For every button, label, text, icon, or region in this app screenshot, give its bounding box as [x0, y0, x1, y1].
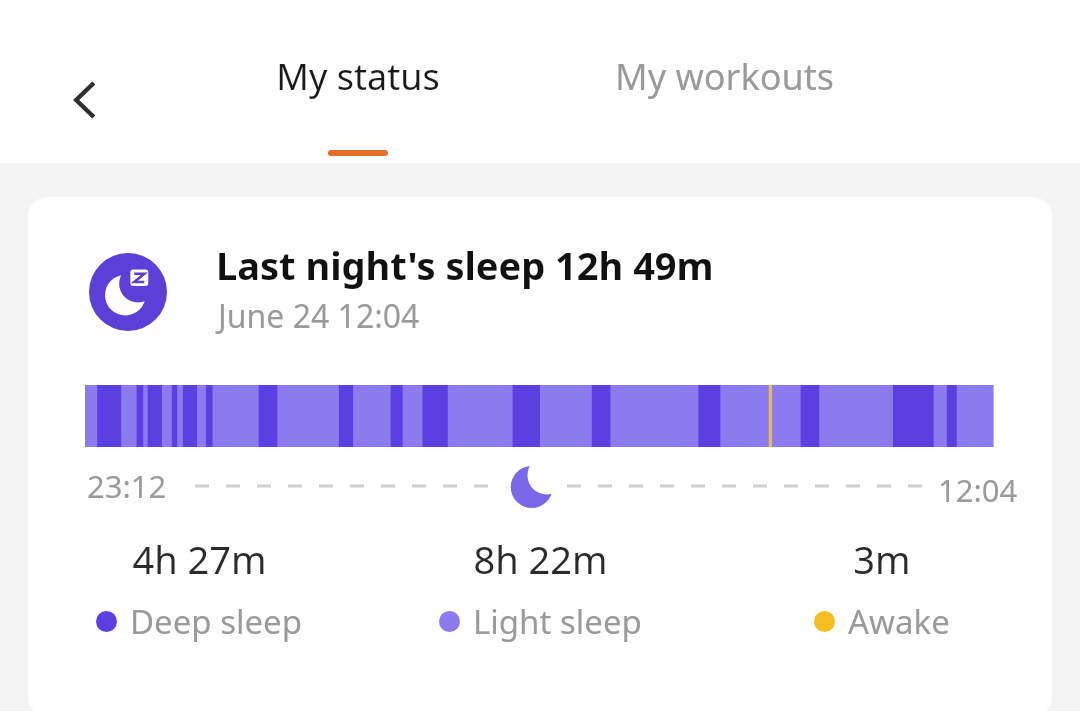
button[interactable]: 4h 27m — [28, 533, 370, 644]
button[interactable]: My status — [230, 52, 486, 156]
staticText: 3m — [853, 533, 911, 585]
staticText: Light sleep — [473, 599, 642, 644]
button[interactable]: 3m — [711, 533, 1052, 644]
button[interactable]: Back — [48, 63, 122, 137]
staticText: June 24 12:04 — [218, 294, 420, 338]
button[interactable]: Last night's sleep 12h 49m — [28, 197, 1052, 711]
staticText: Last night's sleep 12h 49m — [216, 239, 714, 291]
staticText: My workouts — [615, 52, 834, 101]
staticText: My status — [276, 52, 440, 101]
staticText: 23:12 — [87, 465, 167, 507]
staticText: 4h 27m — [132, 533, 267, 585]
staticText: Deep sleep — [130, 599, 303, 644]
staticText: 8h 22m — [473, 533, 608, 585]
button[interactable]: My workouts — [566, 52, 882, 112]
staticText: Awake — [848, 599, 950, 644]
staticText: 12:04 — [938, 469, 1018, 511]
button[interactable]: 8h 22m — [370, 533, 711, 644]
